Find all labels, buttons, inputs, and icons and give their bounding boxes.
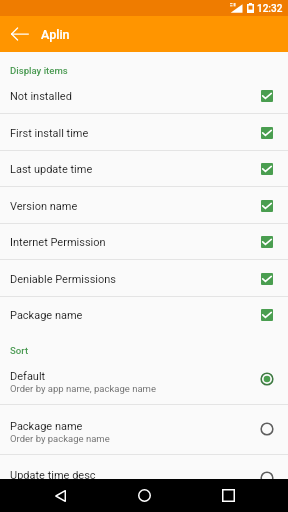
button[interactable]: Deniable Permissions [0,260,288,297]
button[interactable]: Navigate up [10,16,29,52]
staticText: Deniable Permissions [10,273,261,286]
staticText: Default [10,370,46,383]
staticText: Sort [10,345,29,356]
staticText: Not installed [10,90,261,103]
button[interactable]: Default [0,355,288,405]
staticText: First install time [10,127,261,140]
button[interactable]: Recent apps [204,479,252,512]
staticText: Package name [10,420,83,433]
staticText: Internet Permission [10,236,261,249]
button[interactable]: Home [120,479,168,512]
staticText: Last update time [10,163,261,176]
button[interactable]: Version name [0,187,288,224]
staticText: Package name [10,309,261,322]
staticText: Display items [10,65,68,76]
button[interactable]: Package name [0,296,288,333]
button[interactable]: Last update time [0,150,288,187]
button[interactable]: Back [36,479,84,512]
button[interactable]: Not installed [0,77,288,114]
button[interactable]: Update time desc [0,454,288,504]
staticText: Order by package name [10,433,110,444]
staticText: 12:32 [257,3,283,15]
staticText: Order by app name, package name [10,383,156,394]
staticText: Aplin [41,27,70,42]
button[interactable]: Internet Permission [0,223,288,260]
button[interactable]: First install time [0,114,288,151]
button[interactable]: Package name [0,405,288,455]
staticText: Version name [10,200,261,213]
staticText: Update time desc [10,469,96,482]
